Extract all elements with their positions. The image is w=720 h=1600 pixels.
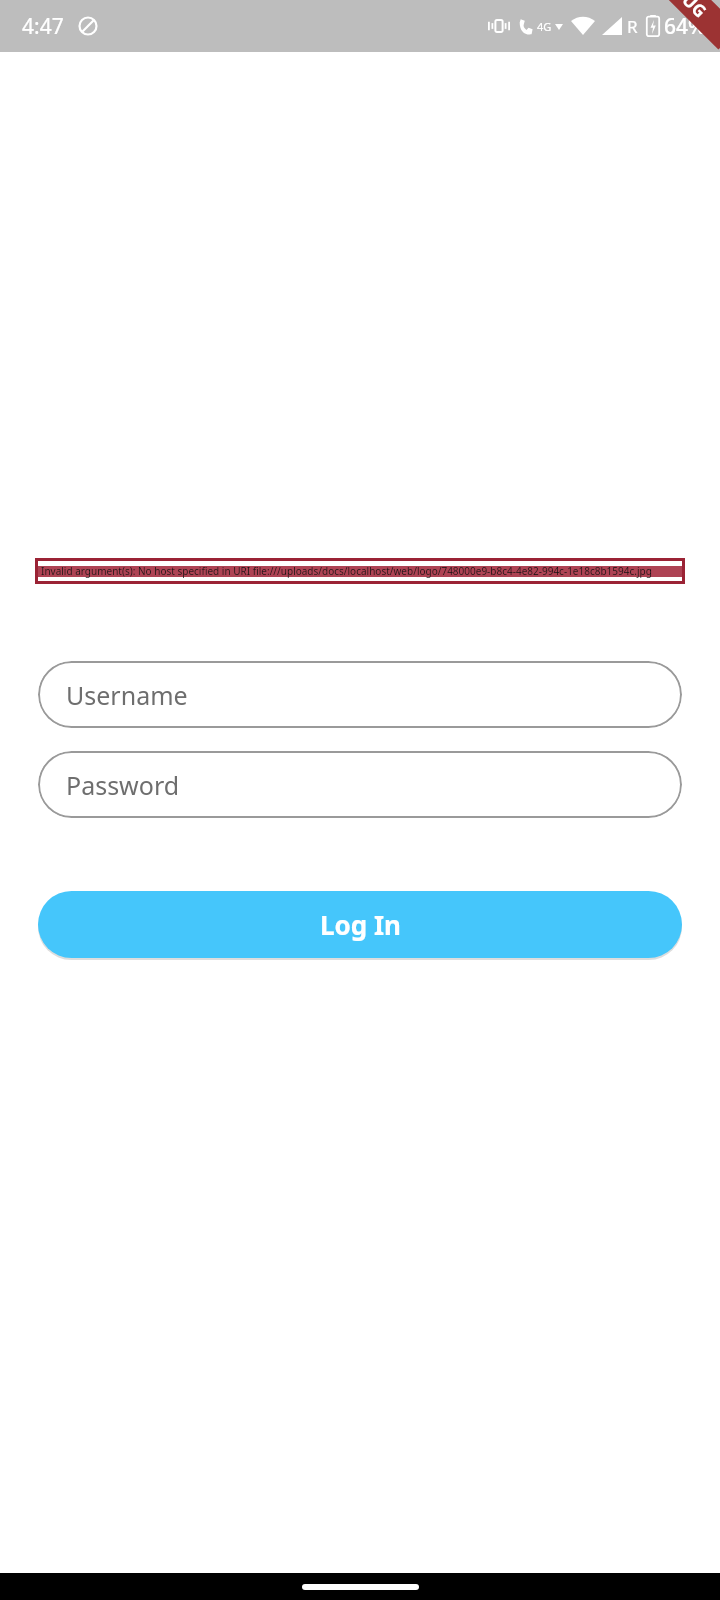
staticText: Password — [66, 768, 180, 802]
staticText: R — [627, 15, 638, 38]
staticText: Invalid argument(s): No host specified i… — [41, 564, 652, 578]
staticText: Log In — [320, 907, 401, 942]
staticText: Username — [66, 678, 188, 712]
button[interactable]: Password — [38, 751, 682, 818]
button[interactable]: Log In — [38, 891, 682, 958]
staticText: DEBUG — [654, 0, 712, 23]
staticText: 64% — [664, 12, 706, 41]
staticText: 4:47 — [22, 12, 64, 41]
staticText: 4G — [537, 19, 552, 34]
button[interactable]: Username — [38, 661, 682, 728]
